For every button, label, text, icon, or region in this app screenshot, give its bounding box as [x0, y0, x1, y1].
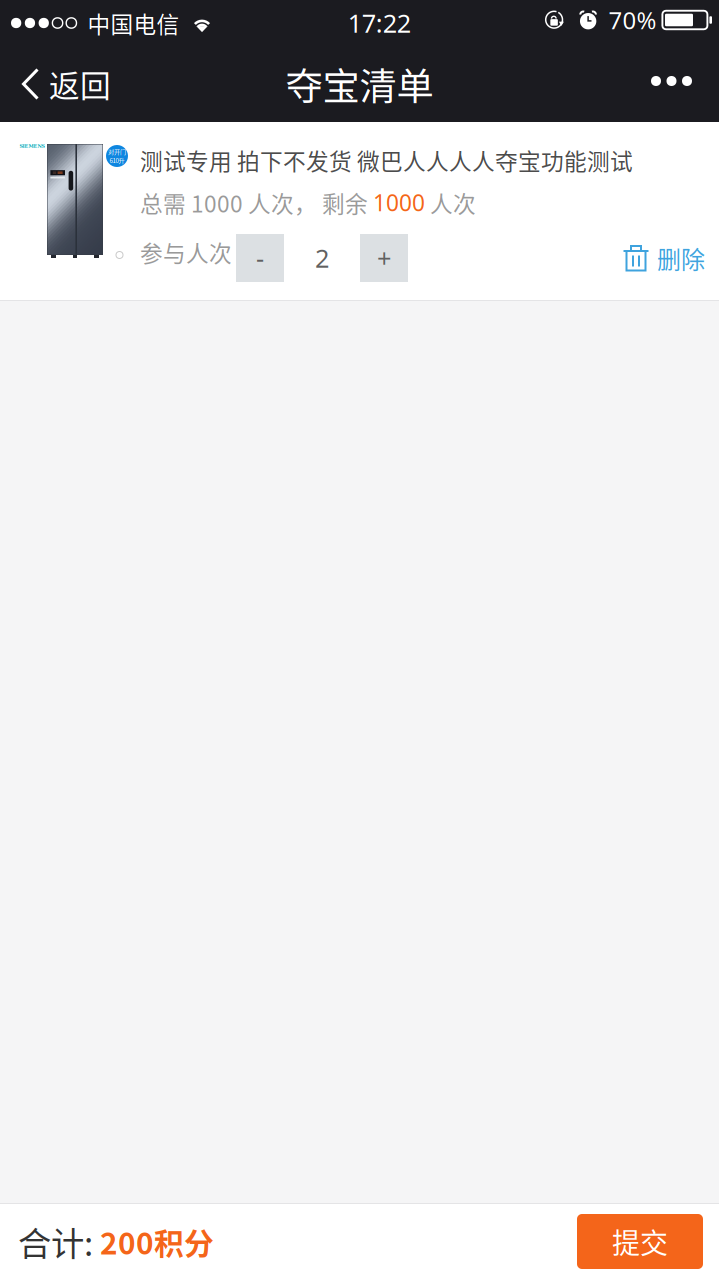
staticText: SIEMENS: [19, 143, 44, 149]
staticText: 人次: [425, 186, 476, 219]
staticText: 夺宝清单: [285, 57, 433, 111]
button[interactable]: 删除: [619, 234, 705, 282]
staticText: 删除: [657, 241, 705, 275]
staticText: 17:22: [348, 6, 411, 40]
staticText: +: [377, 241, 391, 275]
staticText: 70%: [608, 4, 656, 36]
staticText: 2: [315, 241, 329, 275]
staticText: 合计:: [18, 1217, 100, 1266]
staticText: 返回: [49, 62, 111, 106]
button[interactable]: 提交: [577, 1214, 703, 1269]
staticText: -: [256, 241, 264, 275]
staticText: 200积分: [100, 1220, 214, 1263]
staticText: 提交: [612, 1221, 668, 1262]
staticText: 610升: [109, 156, 124, 165]
staticText: 测试专用 拍下不发货 微巴人人人人夺宝功能测试: [140, 144, 633, 176]
button[interactable]: 返回: [0, 46, 127, 122]
staticText: 参与人次: [140, 236, 232, 268]
button[interactable]: +: [360, 234, 408, 282]
button[interactable]: -: [236, 234, 284, 282]
staticText: 对开门: [108, 147, 126, 156]
button[interactable]: More options: [629, 46, 719, 122]
staticText: 总需 1000 人次， 剩余: [140, 186, 373, 219]
staticText: 中国电信: [87, 7, 179, 39]
staticText: 1000: [373, 187, 425, 218]
